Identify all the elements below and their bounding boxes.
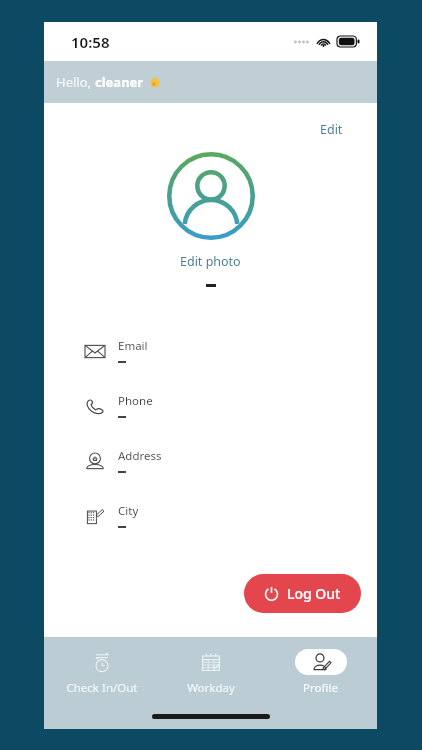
- staticText: Phone: [118, 393, 153, 409]
- button[interactable]: Workday: [158, 647, 263, 698]
- staticText: City: [118, 503, 139, 519]
- staticText: Address: [118, 448, 162, 464]
- staticText: Email: [118, 338, 148, 354]
- button[interactable]: Edit: [316, 119, 347, 140]
- button[interactable]: Phone: [44, 393, 377, 418]
- staticText: Edit: [320, 121, 343, 138]
- other: Workday: [201, 652, 221, 672]
- staticText: Edit photo: [180, 253, 241, 270]
- button[interactable]: City: [44, 503, 377, 528]
- button[interactable]: Profile: [268, 647, 373, 698]
- other: Profile: [312, 653, 331, 672]
- staticText: Hello,: [56, 73, 95, 91]
- staticText: cleaner: [95, 73, 144, 91]
- staticText: Profile: [303, 680, 338, 696]
- button[interactable]: Email: [44, 338, 377, 363]
- button[interactable]: Check In/Out: [49, 647, 154, 698]
- staticText: Workday: [187, 680, 235, 696]
- staticText: Check In/Out: [66, 680, 138, 696]
- staticText: Log Out: [287, 584, 341, 603]
- button[interactable]: Log Out: [244, 574, 361, 613]
- button[interactable]: Address: [44, 448, 377, 473]
- button[interactable]: Edit photo: [174, 251, 247, 272]
- staticText: 10:58: [71, 32, 110, 52]
- other: Check In/Out: [92, 652, 112, 672]
